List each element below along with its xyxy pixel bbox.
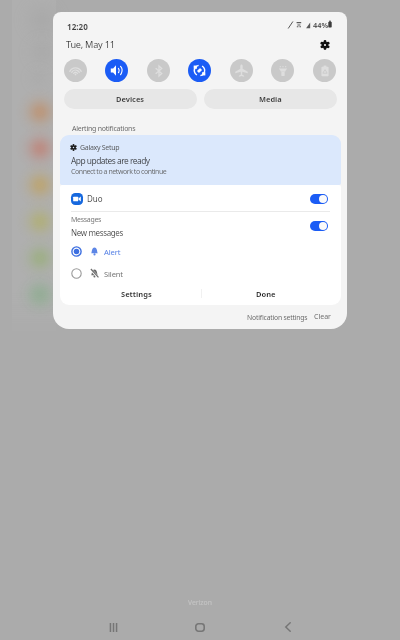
staticText: Duo [87, 193, 103, 204]
staticText: 44% [313, 20, 329, 30]
button[interactable]: Wi-Fi [64, 59, 87, 82]
button[interactable]: Toggle notification [310, 221, 328, 231]
button[interactable]: Home [178, 609, 222, 640]
button[interactable]: Silent [71, 263, 341, 284]
button[interactable]: Notification settings [245, 310, 310, 325]
button[interactable]: Done [204, 285, 328, 302]
staticText: Verizon [188, 598, 212, 607]
staticText: Alert [104, 247, 121, 257]
button[interactable]: Duo [71, 186, 328, 211]
button[interactable]: Devices [64, 89, 197, 109]
button[interactable]: Messages [71, 213, 328, 239]
staticText: Clear [314, 312, 331, 322]
button[interactable]: Toggle notification [310, 194, 328, 204]
button[interactable]: Media [204, 89, 337, 109]
button[interactable]: Flashlight [271, 59, 294, 82]
staticText: 12:20 [67, 21, 88, 32]
staticText: Devices [116, 94, 145, 104]
staticText: Settings [121, 289, 152, 299]
button[interactable]: Recents [91, 609, 135, 640]
staticText: Silent [104, 269, 123, 279]
staticText: Messages [71, 215, 102, 225]
button[interactable]: Galaxy Setup [60, 135, 341, 185]
button[interactable]: Auto rotate [188, 59, 211, 82]
button[interactable]: Bluetooth [147, 59, 170, 82]
staticText: Done [256, 289, 276, 299]
staticText: Tue, May 11 [66, 38, 115, 51]
button[interactable]: Settings [74, 285, 198, 302]
button[interactable]: Airplane mode [230, 59, 253, 82]
staticText: Connect to a network to continue [71, 167, 167, 177]
staticText: Alerting notifications [72, 124, 136, 134]
button[interactable]: Back [266, 609, 310, 640]
button[interactable]: Settings [316, 36, 334, 54]
staticText: Media [259, 94, 282, 104]
button[interactable]: Clear [312, 309, 333, 325]
staticText: Galaxy Setup [80, 143, 120, 153]
staticText: New messages [71, 227, 124, 238]
staticText: Notification settings [247, 313, 308, 322]
button[interactable]: Power saving [313, 59, 336, 82]
button[interactable]: Alert [71, 241, 341, 262]
button[interactable]: Sound [105, 59, 128, 82]
staticText: App updates are ready [71, 155, 150, 166]
